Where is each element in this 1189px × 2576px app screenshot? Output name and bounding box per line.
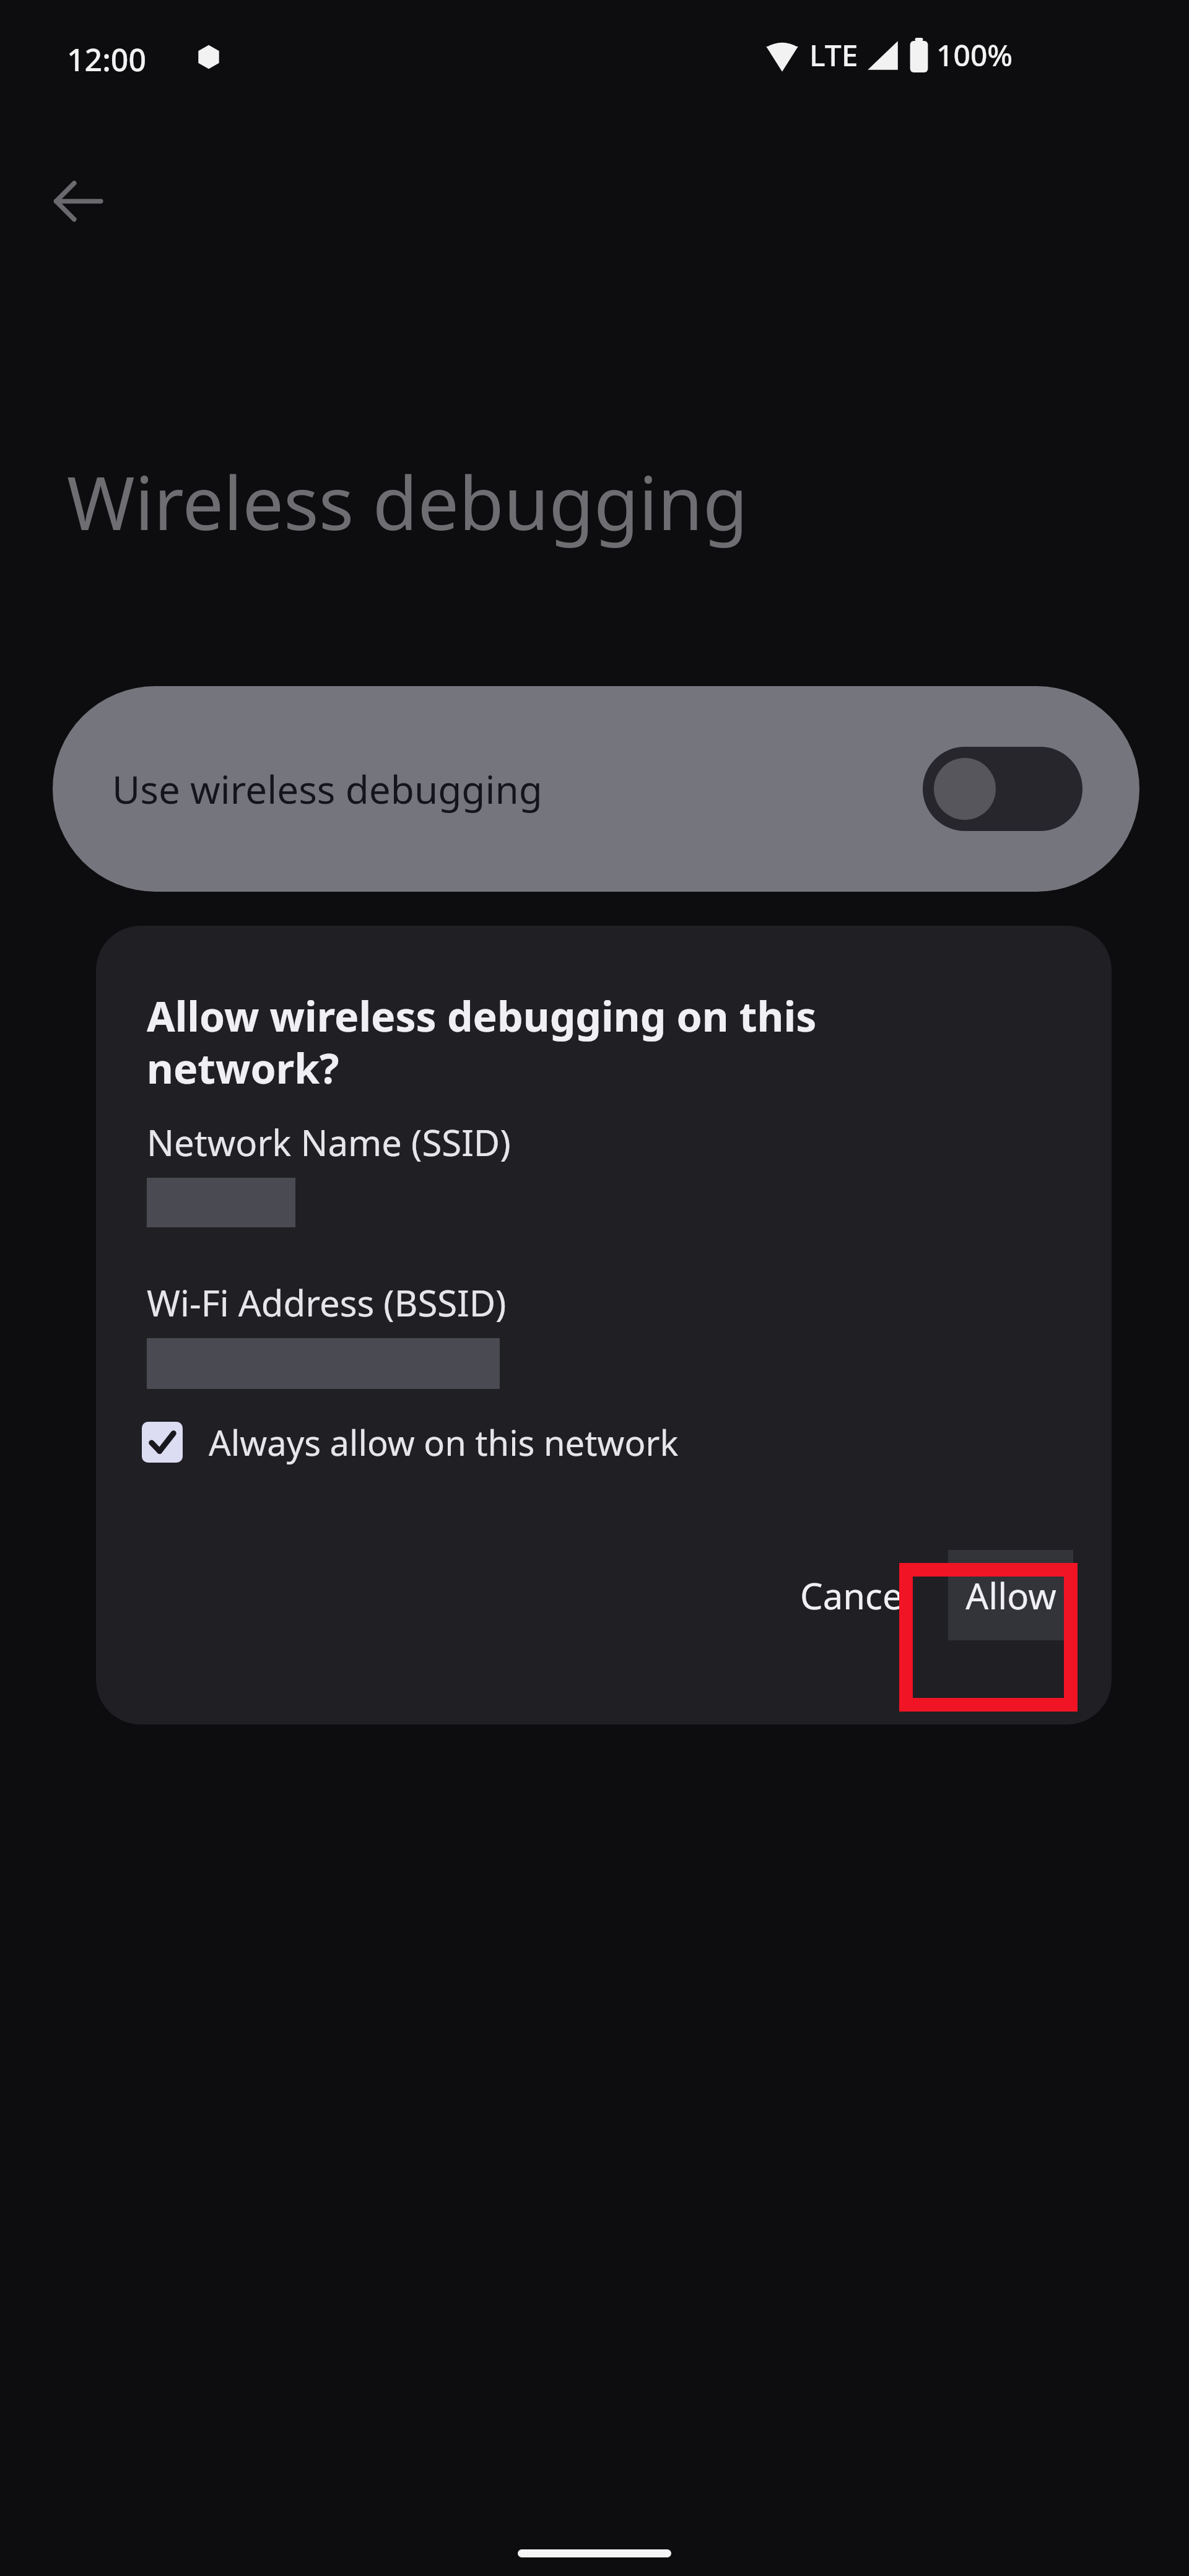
staticText: Wireless debugging (67, 452, 748, 552)
staticText: Allow (965, 1571, 1056, 1620)
staticText: LTE (809, 35, 858, 75)
staticText: Network Name (SSID) (147, 1118, 511, 1167)
staticText: 100% (936, 35, 1013, 75)
button[interactable]: Allow (948, 1550, 1073, 1640)
button[interactable]: Use wireless debugging (53, 686, 1139, 892)
staticText: 12:00 (67, 38, 146, 80)
button[interactable]: Back (30, 154, 125, 249)
button[interactable]: Cancel (773, 1555, 939, 1636)
button[interactable]: Always allow on this network (134, 1405, 679, 1479)
staticText: Wi-Fi Address (BSSID) (147, 1278, 507, 1327)
staticText: Cancel (800, 1571, 912, 1620)
staticText: Allow wireless debugging on this network… (147, 988, 817, 1095)
staticText: Use wireless debugging (112, 763, 542, 815)
staticText: Always allow on this network (209, 1419, 679, 1466)
